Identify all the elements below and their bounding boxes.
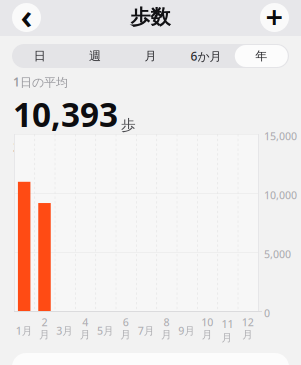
- staticText: 0: [264, 306, 270, 320]
- button[interactable]: 日: [12, 44, 67, 68]
- staticText: +: [265, 0, 283, 36]
- staticText: 月: [161, 328, 172, 341]
- staticText: 4: [82, 315, 88, 329]
- staticText: 月: [242, 328, 253, 341]
- staticText: 年: [255, 49, 267, 63]
- button[interactable]: 週: [67, 44, 123, 68]
- staticText: 月: [120, 328, 131, 341]
- staticText: 9月: [178, 323, 195, 338]
- staticText: 8: [163, 315, 169, 329]
- staticText: ‹: [20, 0, 32, 38]
- staticText: 歩数: [130, 5, 170, 29]
- button[interactable]: 追加: [260, 3, 289, 32]
- staticText: 2026年: [13, 139, 53, 155]
- staticText: 5月: [97, 323, 114, 338]
- staticText: 10,393: [13, 92, 118, 136]
- staticText: 6: [123, 315, 129, 329]
- staticText: 月: [202, 328, 213, 341]
- staticText: 10: [201, 315, 213, 329]
- staticText: 月: [144, 49, 156, 63]
- staticText: 15,000: [264, 129, 297, 143]
- staticText: 日: [34, 49, 46, 63]
- staticText: 11月: [221, 317, 233, 344]
- staticText: 7月: [138, 323, 155, 338]
- staticText: 6か月: [190, 48, 221, 64]
- button[interactable]: 6か月: [178, 44, 234, 68]
- staticText: 月: [39, 328, 50, 341]
- staticText: 週: [89, 49, 101, 63]
- staticText: 12: [242, 315, 254, 329]
- staticText: 3月: [56, 323, 73, 338]
- button[interactable]: 月: [123, 44, 178, 68]
- button[interactable]: 年: [234, 44, 289, 68]
- staticText: 1日の平均: [13, 74, 68, 90]
- staticText: 歩: [121, 116, 136, 134]
- staticText: 10,000: [264, 188, 297, 202]
- staticText: 1月: [16, 323, 33, 338]
- staticText: 月: [80, 328, 91, 341]
- staticText: 2: [41, 315, 47, 329]
- button[interactable]: 戻る: [12, 3, 41, 32]
- staticText: 5,000: [264, 247, 291, 261]
